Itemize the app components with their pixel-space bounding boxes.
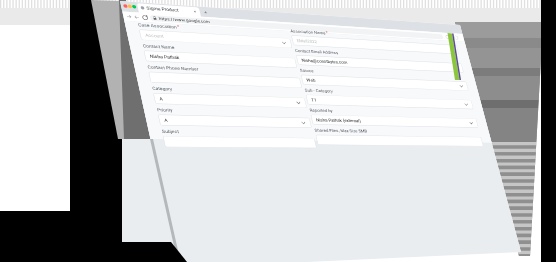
button[interactable]: Browser window showing a case form [0, 0, 556, 262]
